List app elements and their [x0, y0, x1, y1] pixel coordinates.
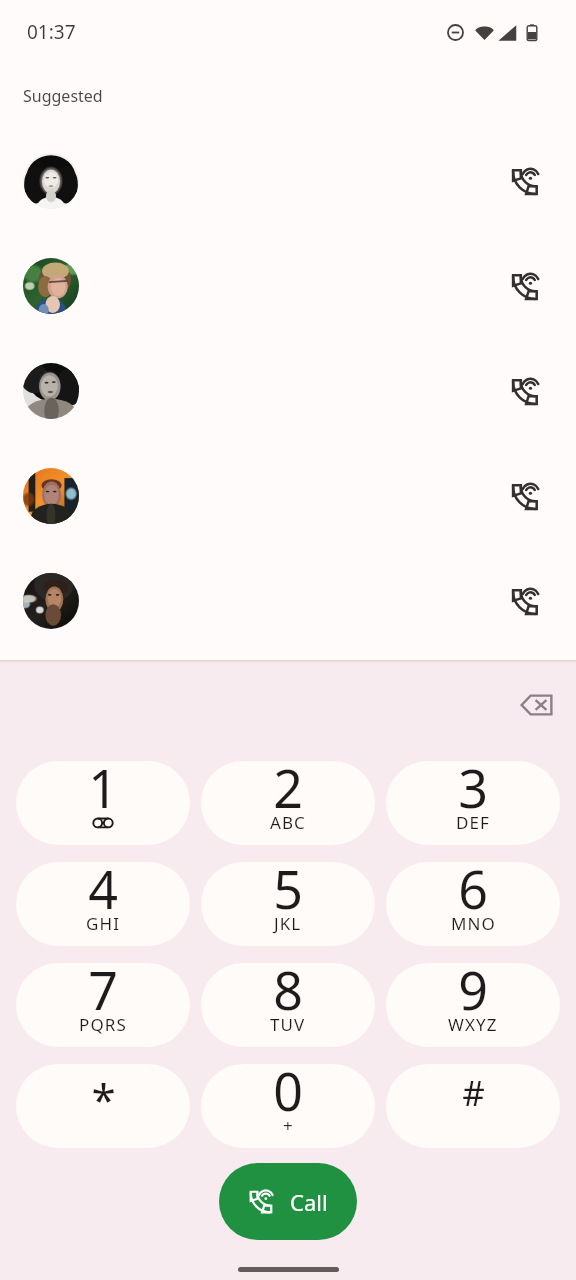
staticText: 01:37 — [27, 19, 76, 45]
button[interactable]: # — [386, 1064, 560, 1148]
staticText: DEF — [456, 811, 490, 834]
button[interactable]: Call contact over WiFi — [507, 268, 543, 304]
button[interactable]: Call contact over WiFi — [507, 478, 543, 514]
staticText: MNO — [451, 912, 496, 935]
staticText: 8 — [273, 963, 303, 1025]
staticText: 7 — [88, 963, 118, 1025]
button[interactable]: Suggested contact 4 — [0, 443, 576, 548]
button[interactable]: Suggested contact 3 — [0, 338, 576, 443]
button[interactable]: Suggested contact 5 — [0, 548, 576, 653]
staticText: WXYZ — [448, 1013, 498, 1036]
button[interactable]: 0 — [201, 1064, 375, 1148]
button[interactable]: Call contact over WiFi — [507, 583, 543, 619]
staticText: + — [283, 1114, 294, 1137]
staticText: 0 — [273, 1064, 303, 1126]
staticText: 1 — [88, 761, 118, 823]
button[interactable]: Call contact over WiFi — [507, 373, 543, 409]
button[interactable]: Suggested contact 2 — [0, 233, 576, 338]
staticText: 2 — [273, 761, 303, 823]
button[interactable]: 2 — [201, 761, 375, 845]
button[interactable]: 8 — [201, 963, 375, 1047]
button[interactable]: 1 — [16, 761, 190, 845]
staticText: * — [91, 1069, 116, 1129]
staticText: JKL — [274, 912, 302, 935]
button[interactable]: 7 — [16, 963, 190, 1047]
button[interactable]: 5 — [201, 862, 375, 946]
button[interactable]: 6 — [386, 862, 560, 946]
staticText: TUV — [270, 1013, 306, 1036]
staticText: 4 — [88, 862, 118, 924]
staticText: 5 — [273, 862, 303, 924]
staticText: ABC — [270, 811, 306, 834]
button[interactable]: Call contact over WiFi — [507, 163, 543, 199]
button[interactable]: 4 — [16, 862, 190, 946]
staticText: Call — [290, 1187, 328, 1217]
staticText: PQRS — [79, 1013, 127, 1036]
staticText: 9 — [458, 963, 488, 1025]
button[interactable]: Backspace — [518, 687, 554, 723]
staticText: 3 — [458, 761, 488, 823]
staticText: # — [462, 1069, 485, 1117]
staticText: Suggested — [23, 85, 103, 107]
button[interactable]: 9 — [386, 963, 560, 1047]
staticText: 6 — [458, 862, 488, 924]
button[interactable]: Suggested contact 1 — [0, 128, 576, 233]
button[interactable]: Call — [219, 1163, 357, 1240]
button[interactable]: 3 — [386, 761, 560, 845]
button[interactable]: * — [16, 1064, 190, 1148]
staticText: GHI — [86, 912, 121, 935]
